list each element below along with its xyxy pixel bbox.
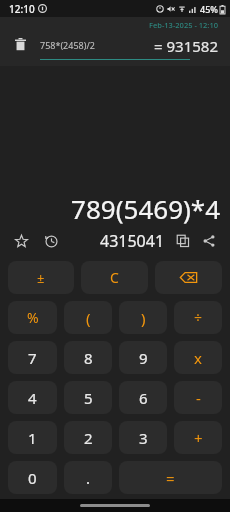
button[interactable]: -	[174, 381, 222, 414]
staticText: 9	[139, 348, 148, 368]
staticText: 1	[28, 428, 37, 448]
button[interactable]: 8	[64, 341, 112, 374]
staticText: Feb-13-2025 - 12:10	[149, 20, 218, 30]
button[interactable]: 3	[119, 421, 167, 454]
staticText: 5	[84, 388, 93, 408]
button[interactable]: ±	[8, 261, 74, 294]
button[interactable]: 1	[8, 421, 57, 454]
button[interactable]: ÷	[174, 301, 222, 334]
button[interactable]: 5	[64, 381, 112, 414]
staticText: ±	[37, 269, 45, 287]
button[interactable]: x	[174, 341, 222, 374]
staticText: ÷	[194, 308, 203, 327]
button[interactable]: (	[64, 301, 112, 334]
button[interactable]: 4	[8, 381, 57, 414]
staticText: 4	[28, 388, 37, 408]
staticText: (	[86, 308, 91, 328]
staticText: C	[110, 268, 119, 287]
staticText: 789(5469)*4	[10, 191, 220, 226]
staticText: 7	[28, 348, 37, 368]
staticText: =	[166, 468, 175, 488]
button[interactable]: =	[119, 461, 222, 494]
button[interactable]: Favorite	[10, 230, 32, 252]
button[interactable]: )	[119, 301, 167, 334]
button[interactable]: 0	[8, 461, 57, 494]
button[interactable]: 9	[119, 341, 167, 374]
staticText: 3	[139, 428, 148, 448]
staticText: 45%	[200, 3, 218, 15]
button[interactable]: 2	[64, 421, 112, 454]
button[interactable]: Share	[198, 230, 220, 252]
button[interactable]: History	[40, 230, 62, 252]
button[interactable]: Delete history	[6, 30, 34, 58]
button[interactable]: 6	[119, 381, 167, 414]
button[interactable]: .	[64, 461, 112, 494]
staticText: 4315041	[100, 230, 165, 252]
button[interactable]: 7	[8, 341, 57, 374]
button[interactable]: +	[174, 421, 222, 454]
button[interactable]: %	[8, 301, 57, 334]
staticText: 6	[139, 388, 148, 408]
staticText: 758*(2458)/2	[40, 39, 95, 51]
staticText: 0	[28, 468, 37, 488]
staticText: 12:10	[9, 2, 35, 16]
staticText: %	[27, 308, 39, 327]
button[interactable]: Backspace	[155, 261, 222, 294]
button[interactable]: C	[81, 261, 148, 294]
staticText: 2	[84, 428, 93, 448]
staticText: x	[194, 348, 202, 368]
staticText: .	[86, 468, 91, 488]
staticText: )	[141, 308, 146, 328]
staticText: -	[196, 388, 201, 408]
staticText: = 931582	[154, 36, 218, 56]
button[interactable]: Copy result	[172, 230, 194, 252]
staticText: 8	[84, 348, 93, 368]
staticText: +	[194, 428, 203, 448]
